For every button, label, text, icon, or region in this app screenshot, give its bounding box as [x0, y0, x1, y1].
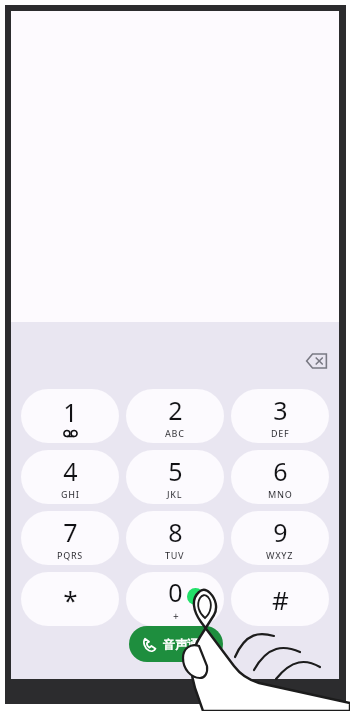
staticText: 7 [63, 515, 78, 549]
button[interactable]: 9 [231, 511, 329, 565]
staticText: 1 [63, 395, 78, 429]
staticText: WXYZ [266, 549, 294, 561]
staticText: GHI [61, 488, 80, 500]
button[interactable]: 3 [231, 389, 329, 443]
staticText: 4 [63, 454, 78, 488]
staticText: 5 [168, 454, 183, 488]
button[interactable]: 1 [21, 389, 119, 443]
staticText: 3 [273, 393, 288, 427]
staticText: 0 [168, 575, 183, 609]
button[interactable]: 4 [21, 450, 119, 504]
button[interactable]: 8 [126, 511, 224, 565]
button[interactable]: 7 [21, 511, 119, 565]
button[interactable]: # [231, 572, 329, 626]
staticText: ABC [165, 427, 185, 439]
staticText: MNO [268, 488, 293, 500]
button[interactable]: 音声通話 [129, 626, 223, 662]
button[interactable]: 6 [231, 450, 329, 504]
staticText: JKL [167, 488, 183, 500]
staticText: 8 [168, 515, 183, 549]
staticText: 6 [273, 454, 288, 488]
staticText: PQRS [57, 549, 83, 561]
button[interactable]: Backspace [299, 344, 333, 378]
staticText: TUV [165, 549, 185, 561]
staticText: 音声通話 [163, 637, 211, 652]
button[interactable]: 5 [126, 450, 224, 504]
staticText: # [272, 582, 289, 617]
staticText: DEF [271, 427, 290, 439]
button[interactable]: 2 [126, 389, 224, 443]
staticText: 2 [168, 393, 183, 427]
staticText: + [173, 609, 179, 623]
button[interactable]: 0 [126, 572, 224, 626]
staticText: * [63, 582, 78, 617]
staticText: 9 [273, 515, 288, 549]
button[interactable]: * [21, 572, 119, 626]
